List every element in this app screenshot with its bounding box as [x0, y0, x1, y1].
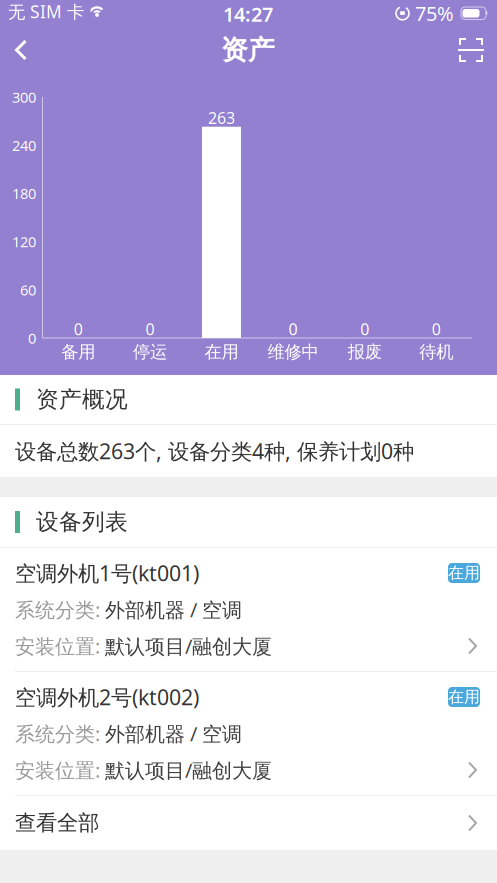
staticText: 0 [145, 318, 154, 340]
staticText: 75% [415, 0, 454, 27]
staticText: 263 [208, 107, 235, 128]
staticText: 设备总数263个, 设备分类4种, 保养计划0种 [15, 437, 414, 465]
staticText: 0 [360, 318, 369, 340]
button[interactable]: Back [0, 28, 43, 72]
staticText: 查看全部 [15, 810, 99, 836]
button[interactable]: Scan [449, 28, 493, 72]
staticText: 设备列表 [36, 508, 128, 536]
staticText: 0 [288, 318, 297, 340]
staticText: 安装位置: [15, 633, 105, 659]
staticText: 240 [12, 135, 36, 155]
staticText: 外部机器 / 空调 [105, 720, 242, 747]
button[interactable]: 空调外机1号(kt001) [0, 548, 497, 671]
staticText: 备用 [61, 341, 95, 363]
staticText: 0 [74, 318, 83, 340]
staticText: 空调外机2号(kt002) [15, 683, 199, 711]
staticText: 在用 [204, 341, 238, 363]
staticText: 空调外机1号(kt001) [15, 559, 199, 587]
staticText: 0 [432, 318, 441, 340]
staticText: 默认项目/融创大厦 [105, 757, 272, 783]
staticText: 180 [12, 184, 36, 203]
staticText: 14:27 [223, 1, 273, 27]
staticText: 120 [12, 232, 36, 251]
staticText: 待机 [419, 341, 453, 363]
button[interactable]: 查看全部 [0, 796, 497, 850]
staticText: 0 [28, 328, 36, 348]
staticText: 停运 [133, 341, 167, 363]
staticText: 报废 [348, 341, 382, 363]
staticText: 安装位置: [15, 757, 105, 783]
staticText: 60 [20, 280, 36, 300]
staticText: 300 [12, 87, 36, 107]
staticText: 维修中 [267, 341, 318, 363]
staticText: 在用 [448, 563, 480, 583]
button[interactable]: 空调外机2号(kt002) [0, 672, 497, 795]
staticText: 无 SIM 卡 [8, 0, 84, 23]
staticText: 资产概况 [36, 386, 128, 413]
staticText: 外部机器 / 空调 [105, 596, 242, 623]
staticText: 资产 [221, 34, 275, 66]
staticText: 在用 [448, 687, 480, 707]
staticText: 系统分类: [15, 596, 105, 623]
staticText: 系统分类: [15, 720, 105, 747]
staticText: 默认项目/融创大厦 [105, 633, 272, 659]
